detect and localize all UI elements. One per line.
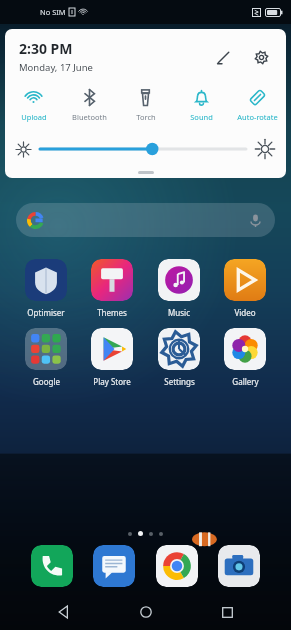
button[interactable]: Camera: [218, 545, 260, 587]
button[interactable]: Music: [148, 259, 210, 318]
button[interactable]: Optimiser: [15, 259, 77, 318]
button[interactable]: Gallery: [214, 328, 276, 387]
staticText: Play Store: [93, 376, 131, 387]
button[interactable]: Torch: [118, 86, 173, 124]
staticText: Google: [33, 376, 60, 387]
staticText: Video: [234, 307, 256, 318]
button[interactable]: Play Store: [81, 328, 143, 387]
staticText: Bluetooth: [72, 112, 107, 122]
button[interactable]: [40, 138, 246, 160]
staticText: Upload: [21, 112, 47, 122]
button[interactable]: Voice search: [16, 203, 275, 237]
button[interactable]: Sound: [174, 86, 229, 124]
staticText: Music: [168, 307, 190, 318]
button[interactable]: Messages: [93, 545, 135, 587]
staticText: Settings: [164, 376, 195, 387]
staticText: Themes: [97, 307, 127, 318]
button[interactable]: Back: [47, 595, 81, 629]
button[interactable]: Recent apps: [210, 595, 244, 629]
staticText: Gallery: [232, 376, 259, 387]
button[interactable]: Edit quick settings: [210, 44, 236, 70]
button[interactable]: Settings: [148, 328, 210, 387]
staticText: Torch: [136, 112, 156, 122]
button[interactable]: Auto-rotate: [230, 86, 285, 124]
staticText: No SIM: [40, 7, 66, 17]
button[interactable]: Settings: [248, 44, 274, 70]
other: Voice search: [248, 213, 263, 228]
button[interactable]: Bluetooth: [62, 86, 117, 124]
button[interactable]: Google: [15, 328, 77, 387]
button[interactable]: Upload: [6, 86, 61, 124]
button[interactable]: Themes: [81, 259, 143, 318]
staticText: 2:30 PM: [19, 39, 73, 58]
button[interactable]: Phone: [31, 545, 73, 587]
staticText: Sound: [190, 112, 213, 122]
button[interactable]: Video: [214, 259, 276, 318]
staticText: Auto-rotate: [237, 112, 278, 122]
button[interactable]: Home: [129, 595, 163, 629]
staticText: Optimiser: [27, 307, 65, 318]
button[interactable]: Chrome: [156, 545, 198, 587]
staticText: Monday, 17 June: [19, 61, 93, 74]
